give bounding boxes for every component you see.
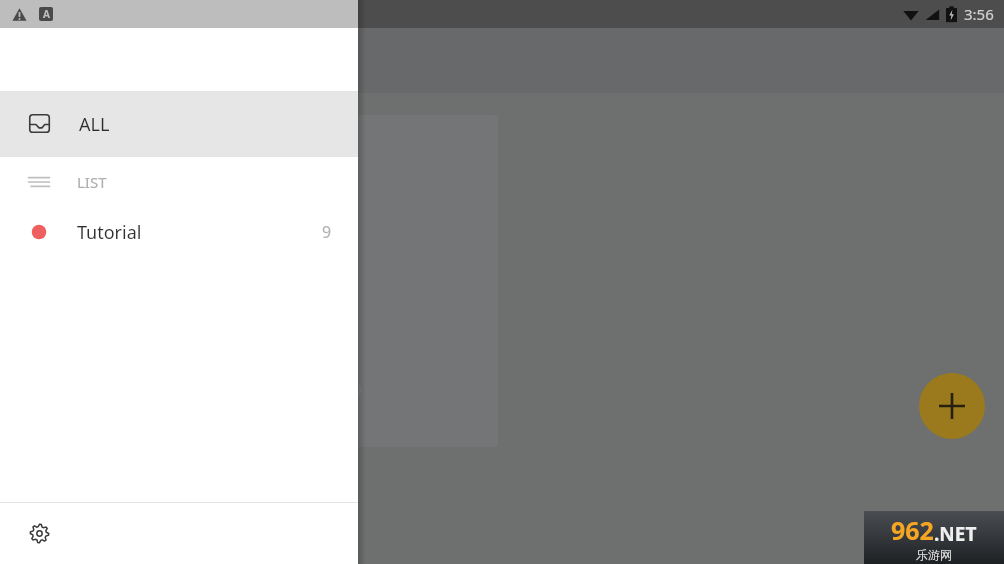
button[interactable]: ALL <box>0 92 358 156</box>
staticText: 962 <box>891 513 934 547</box>
staticText: 9 <box>322 221 332 243</box>
staticText: 乐游网 <box>916 547 952 562</box>
button[interactable]: Tap on the check box to complete a task <box>16 115 498 447</box>
button[interactable]: Add task <box>919 373 985 439</box>
staticText: Tap on the check box to complete a task <box>38 195 261 254</box>
staticText: 3:56 <box>964 4 994 24</box>
staticText: LIST <box>77 172 107 192</box>
staticText: .NET <box>934 521 977 547</box>
staticText: Tutorial <box>77 220 142 245</box>
staticText: Long press to edit or delete this task. … <box>38 343 363 402</box>
staticText: A <box>43 7 50 21</box>
staticText: ALL <box>79 112 110 137</box>
button[interactable]: Settings <box>0 503 358 564</box>
button[interactable]: Tutorial <box>0 207 358 257</box>
